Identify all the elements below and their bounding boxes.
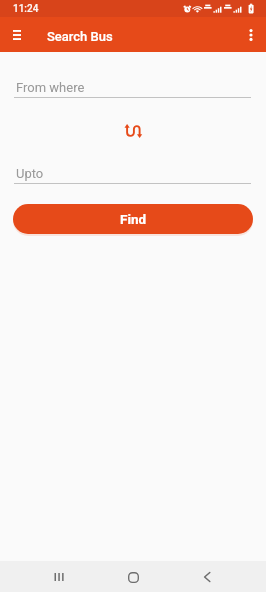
staticText: 11:24 xyxy=(13,3,39,15)
staticText: Upto xyxy=(16,166,44,181)
button[interactable]: From where xyxy=(14,78,251,98)
button[interactable]: Swap locations xyxy=(122,120,144,142)
button[interactable]: Find xyxy=(13,204,253,234)
staticText: Search Bus xyxy=(47,29,113,44)
button[interactable]: Upto xyxy=(14,164,251,184)
button[interactable]: Menu xyxy=(4,22,30,48)
button[interactable]: More options xyxy=(238,22,264,48)
staticText: From where xyxy=(16,80,85,95)
button[interactable]: Home xyxy=(118,562,148,592)
staticText: Find xyxy=(120,211,147,227)
button[interactable]: Recents xyxy=(44,562,74,592)
button[interactable]: Back xyxy=(192,562,222,592)
